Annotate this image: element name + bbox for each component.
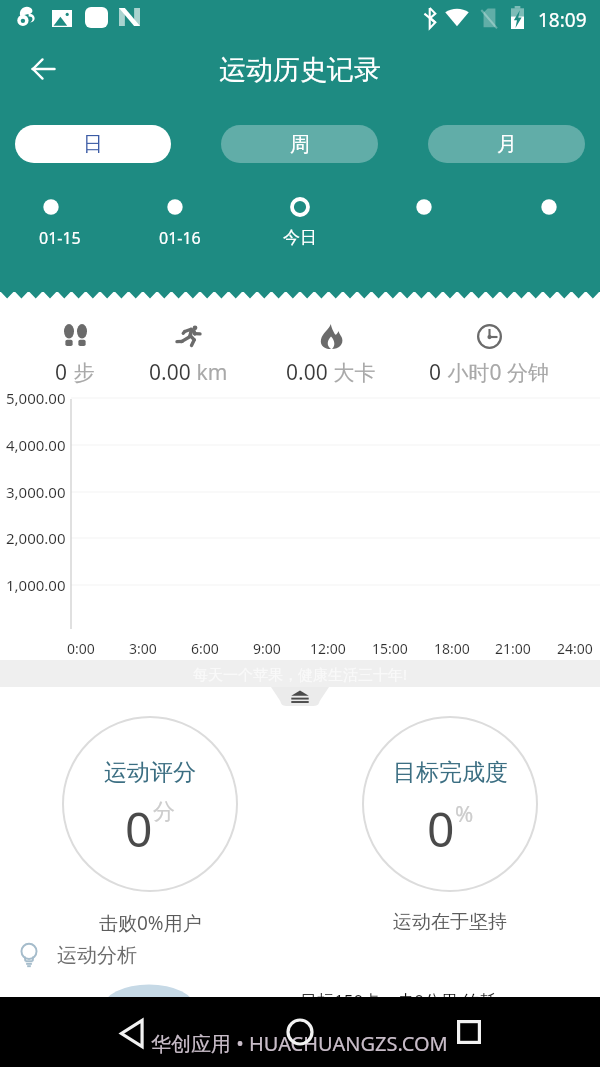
staticText: 每天一个苹果，健康生活三十年! [193,664,408,684]
staticText: 01-16 [159,227,201,249]
staticText: 月 [497,132,517,157]
staticText: % [455,798,474,828]
staticText: 目标150卡，走0公里,约耗… [300,989,510,1012]
button[interactable]: 目标完成度 [362,716,538,892]
staticText: 18:09 [538,7,587,33]
button[interactable]: 日 [15,125,171,163]
staticText: 华创应用 • HUACHUANGZS.COM [151,1030,448,1057]
staticText: 3,000.00 [6,482,66,502]
button[interactable]: Back [20,46,65,91]
staticText: 运动评分 [104,758,196,787]
staticText: km [191,358,228,387]
button[interactable] [260,186,340,246]
staticText: 0.00 [149,358,191,387]
button[interactable]: Expand panel [271,687,329,706]
staticText: 周 [290,132,310,157]
button[interactable] [135,186,215,246]
staticText: 大卡 [328,358,376,387]
staticText: 0.00 [286,358,328,387]
staticText: 步 [68,358,95,387]
staticText: 0 [125,796,153,861]
staticText: 3:00 [129,639,157,658]
button[interactable]: 月 [428,125,585,163]
button[interactable] [509,186,589,246]
staticText: 2,000.00 [6,528,66,548]
staticText: 5,000.00 [6,388,66,408]
staticText: 4,000.00 [6,435,66,455]
staticText: 12:00 [310,639,346,658]
button[interactable]: 运动评分 [62,716,238,892]
staticText: 日 [83,132,103,157]
button[interactable]: 运动分析 [16,940,137,970]
button[interactable] [11,186,91,246]
staticText: 0 [429,358,442,387]
staticText: 15:00 [372,639,408,658]
staticText: 运动历史记录 [219,53,381,87]
staticText: 分 [153,798,175,826]
button[interactable]: Back [109,1010,155,1056]
button[interactable]: Recent apps [446,1009,492,1055]
staticText: 0 [427,796,455,861]
staticText: 运动在于坚持 [393,910,507,934]
staticText: 0:00 [67,639,95,658]
staticText: 今日 [283,227,317,248]
staticText: 运动分析 [57,943,137,968]
staticText: 18:00 [434,639,470,658]
staticText: 目标完成度 [393,758,508,787]
staticText: 1,000.00 [6,575,66,595]
staticText: 24:00 [557,639,593,658]
staticText: 0 [55,358,68,387]
button[interactable] [384,186,464,246]
button[interactable]: 周 [221,125,378,163]
staticText: 6:00 [191,639,219,658]
staticText: 21:00 [495,639,531,658]
staticText: 9:00 [253,639,281,658]
staticText: 击败0%用户 [99,910,202,936]
button[interactable]: Home [277,1009,323,1055]
staticText: 小时0 分钟 [442,358,549,387]
staticText: 01-15 [39,227,81,249]
